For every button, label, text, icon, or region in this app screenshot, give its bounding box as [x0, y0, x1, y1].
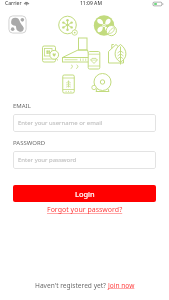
staticText: Join now: [108, 281, 135, 290]
staticText: PASSWORD: [13, 139, 46, 147]
staticText: EMAIL: [13, 102, 31, 110]
button[interactable]: Enter your password: [13, 151, 156, 169]
staticText: 11:09 AM: [80, 0, 102, 7]
button[interactable]: Enter your username or email: [13, 114, 156, 132]
staticText: Forgot your password?: [47, 205, 123, 215]
button[interactable]: Login: [13, 185, 156, 202]
button[interactable]: Join now: [108, 281, 135, 290]
button[interactable]: Forgot your password?: [47, 205, 123, 215]
staticText: Carrier: [5, 0, 22, 7]
staticText: Enter your password: [18, 156, 77, 164]
staticText: Enter your username or email: [18, 119, 103, 127]
staticText: Login: [75, 189, 95, 199]
staticText: Haven't registered yet?: [35, 281, 108, 290]
